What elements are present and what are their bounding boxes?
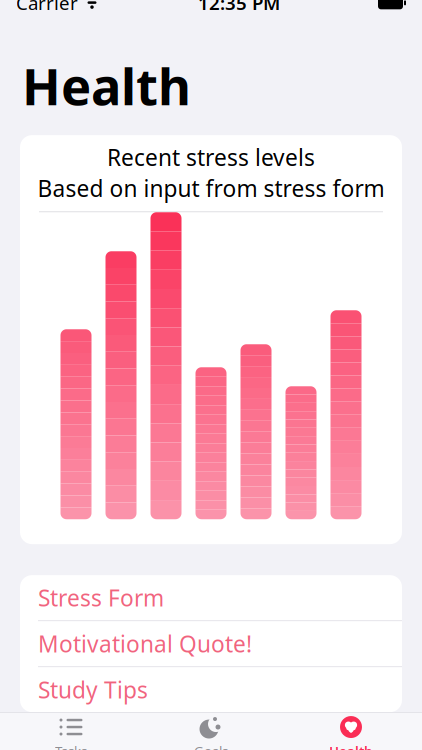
staticText: Stress Form: [38, 583, 164, 613]
button[interactable]: Goals: [141, 713, 281, 750]
button[interactable]: Motivational Quote!: [20, 621, 402, 666]
button[interactable]: Study Tips: [20, 667, 402, 712]
button[interactable]: Health: [281, 713, 421, 750]
button[interactable]: Tasks: [1, 713, 141, 750]
staticText: Recent stress levels: [107, 142, 315, 172]
staticText: Motivational Quote!: [38, 629, 252, 659]
staticText: Health: [329, 742, 373, 750]
staticText: 12:35 PM: [198, 0, 280, 15]
staticText: Health: [22, 52, 191, 119]
staticText: Carrier: [16, 0, 78, 15]
staticText: Study Tips: [38, 675, 148, 705]
staticText: Tasks: [55, 742, 87, 750]
button[interactable]: Stress Form: [20, 575, 402, 620]
staticText: Based on input from stress form: [37, 173, 384, 203]
staticText: Goals: [194, 742, 228, 750]
